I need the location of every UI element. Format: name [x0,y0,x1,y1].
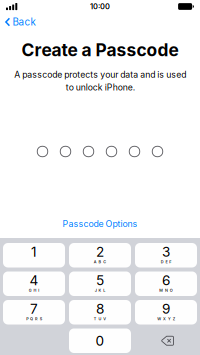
button[interactable]: Delete [135,328,197,353]
staticText: ABC [94,259,106,264]
button[interactable]: 5 [69,271,131,296]
staticText: 4 [29,272,38,288]
staticText: 6 [162,272,170,288]
staticText: GHI [29,288,39,293]
staticText: 10:00 [90,2,110,11]
staticText: DEF [161,259,171,264]
staticText: 9 [162,300,170,317]
staticText: 8 [96,300,104,317]
button[interactable]: Passcode Options [56,215,143,232]
staticText: TUV [94,316,106,321]
staticText: 1 [31,243,37,260]
button[interactable]: Back [0,14,41,30]
staticText: Create a Passcode [21,39,178,60]
button[interactable]: 0 [69,328,131,353]
button[interactable]: 6 [135,271,197,296]
staticText: 3 [162,243,170,260]
staticText: WXYZ [157,316,175,321]
button[interactable]: 8 [69,300,131,324]
button[interactable]: 4 [3,271,65,296]
staticText: 7 [30,300,38,317]
button[interactable]: 3 [135,243,197,267]
staticText: JKL [95,288,105,293]
staticText: PQRS [26,316,42,321]
staticText: 0 [95,332,104,349]
button[interactable]: 1 [3,243,65,267]
staticText: 5 [96,272,104,288]
staticText: Passcode Options [62,218,137,229]
staticText: 2 [96,243,104,260]
staticText: MNO [159,288,173,293]
staticText: A passcode protects your data and is use… [14,69,186,93]
button[interactable]: 7 [3,300,65,324]
staticText: Back [12,16,35,28]
button[interactable]: 2 [69,243,131,267]
button[interactable]: 9 [135,300,197,324]
